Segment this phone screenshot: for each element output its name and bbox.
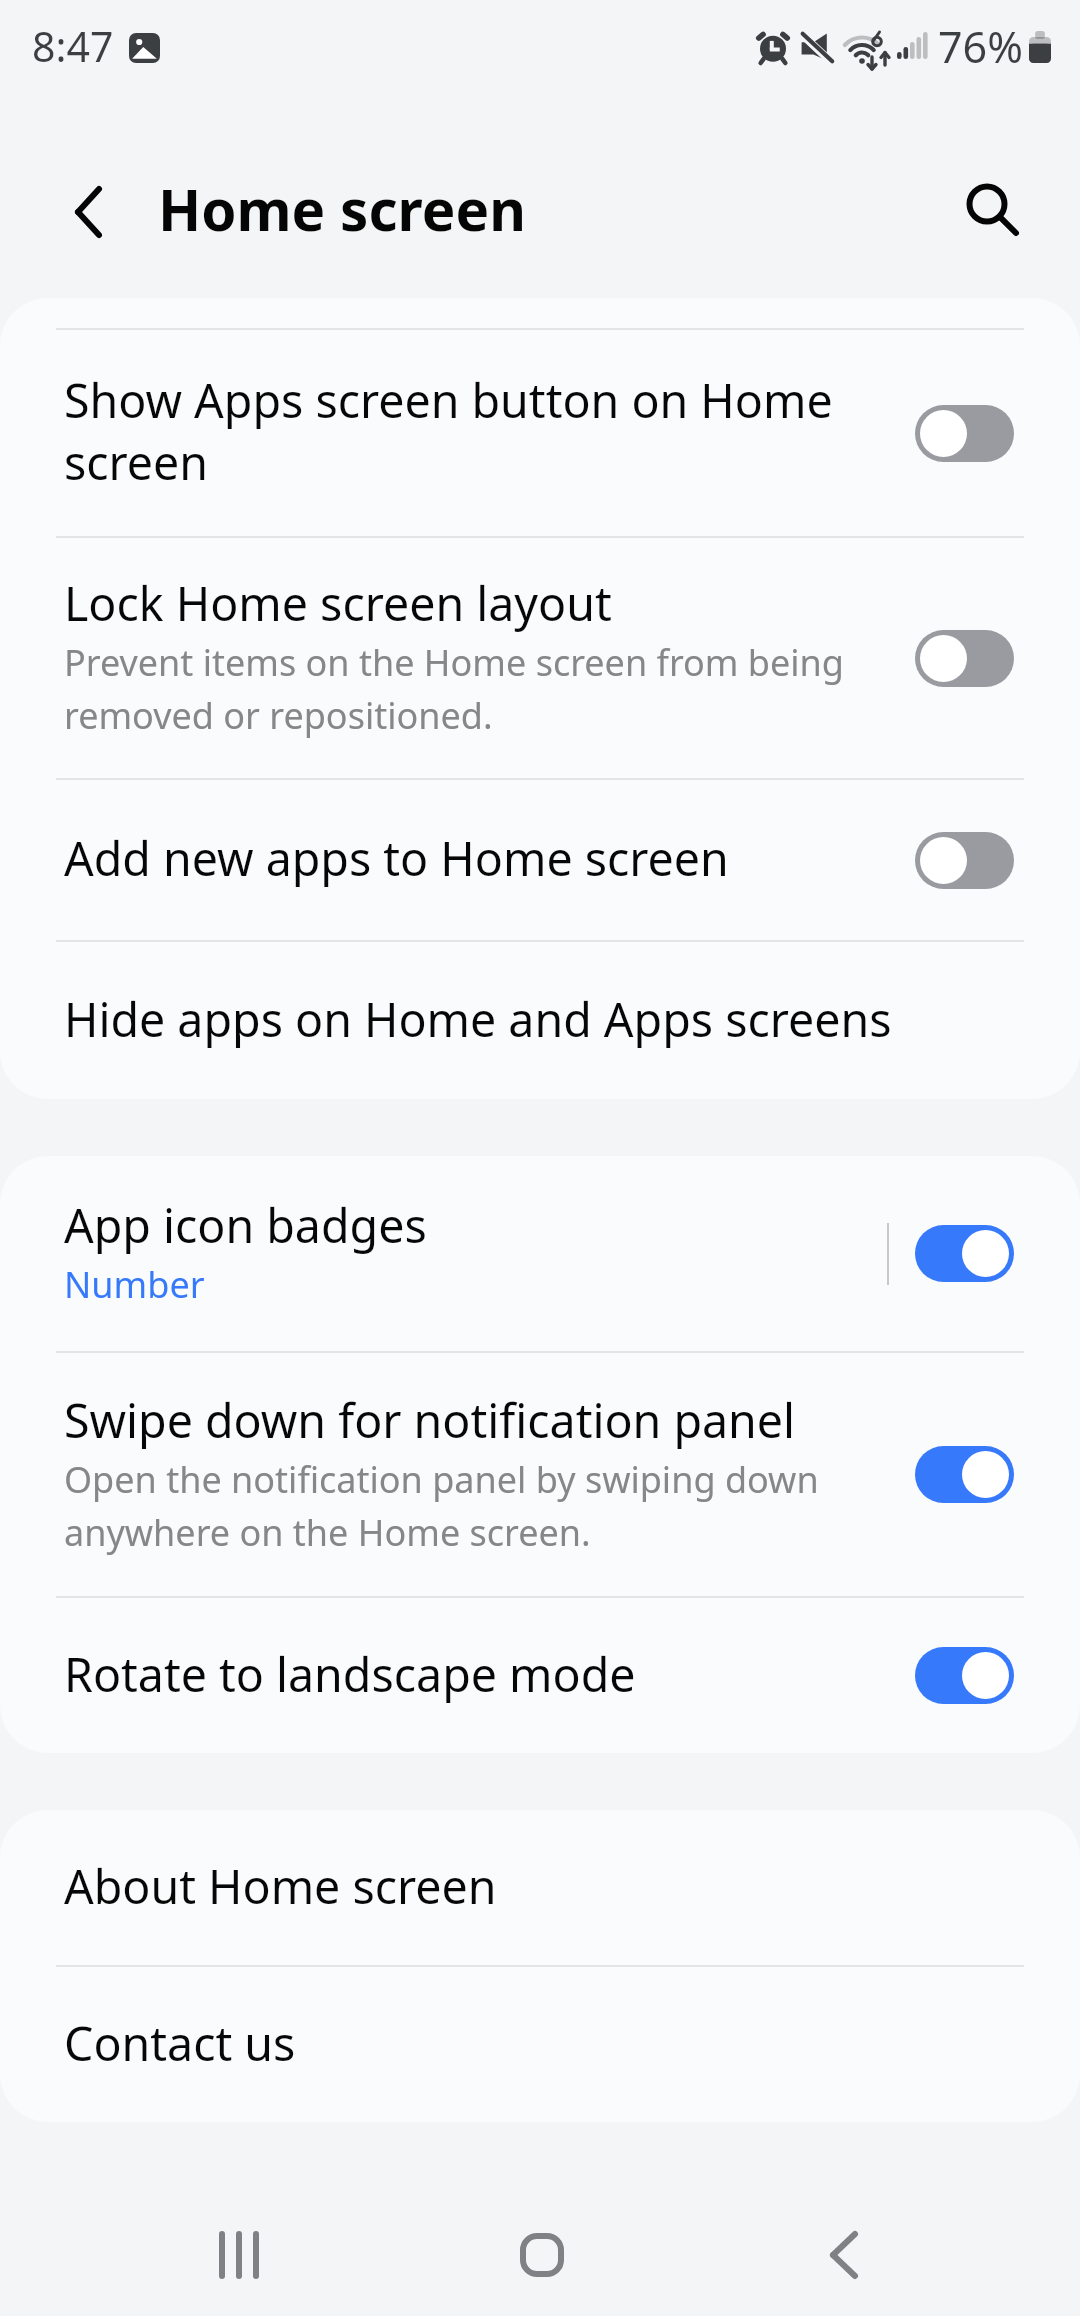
button[interactable]: Hide apps on Home and Apps screens [0, 942, 1080, 1099]
button[interactable]: About Home screen [0, 1810, 1080, 1965]
staticText: About Home screen [64, 1855, 497, 1917]
staticText: Number [64, 1256, 205, 1309]
button[interactable]: Recent apps [154, 2194, 324, 2316]
staticText: Prevent items on the Home screen from be… [64, 634, 889, 740]
button[interactable]: Off [915, 405, 1014, 462]
button[interactable]: Off [915, 832, 1014, 889]
button[interactable]: Rotate to landscape mode [0, 1598, 1080, 1753]
button[interactable]: Lock Home screen layout [0, 538, 1080, 778]
staticText: App icon badges [64, 1194, 427, 1256]
button[interactable]: Back [759, 2194, 929, 2316]
button[interactable]: On [915, 1647, 1014, 1704]
staticText: 8:47 [32, 18, 114, 74]
button[interactable]: App icon badges [0, 1156, 1080, 1351]
button[interactable]: On [915, 1446, 1014, 1503]
button[interactable]: Search [950, 167, 1038, 255]
staticText: Home screen [158, 171, 526, 248]
button[interactable]: Home [457, 2194, 627, 2316]
button[interactable]: Off [915, 630, 1014, 687]
button[interactable]: Contact us [0, 1967, 1080, 2122]
button[interactable]: Swipe down for notification panel [0, 1353, 1080, 1596]
staticText: Show Apps screen button on Home screen [64, 369, 889, 493]
staticText: Rotate to landscape mode [64, 1643, 636, 1705]
staticText: Hide apps on Home and Apps screens [64, 988, 892, 1050]
button[interactable]: Navigate up [48, 172, 128, 252]
staticText: Swipe down for notification panel [64, 1389, 796, 1451]
staticText: Open the notification panel by swiping d… [64, 1451, 889, 1557]
staticText: 76% [938, 17, 1023, 76]
staticText: Add new apps to Home screen [64, 827, 729, 889]
button[interactable]: On [915, 1225, 1014, 1282]
button[interactable]: Show Apps screen button on Home screen [0, 330, 1080, 536]
staticText: Contact us [64, 2012, 296, 2074]
button[interactable]: Add new apps to Home screen [0, 780, 1080, 940]
staticText: Lock Home screen layout [64, 572, 612, 634]
